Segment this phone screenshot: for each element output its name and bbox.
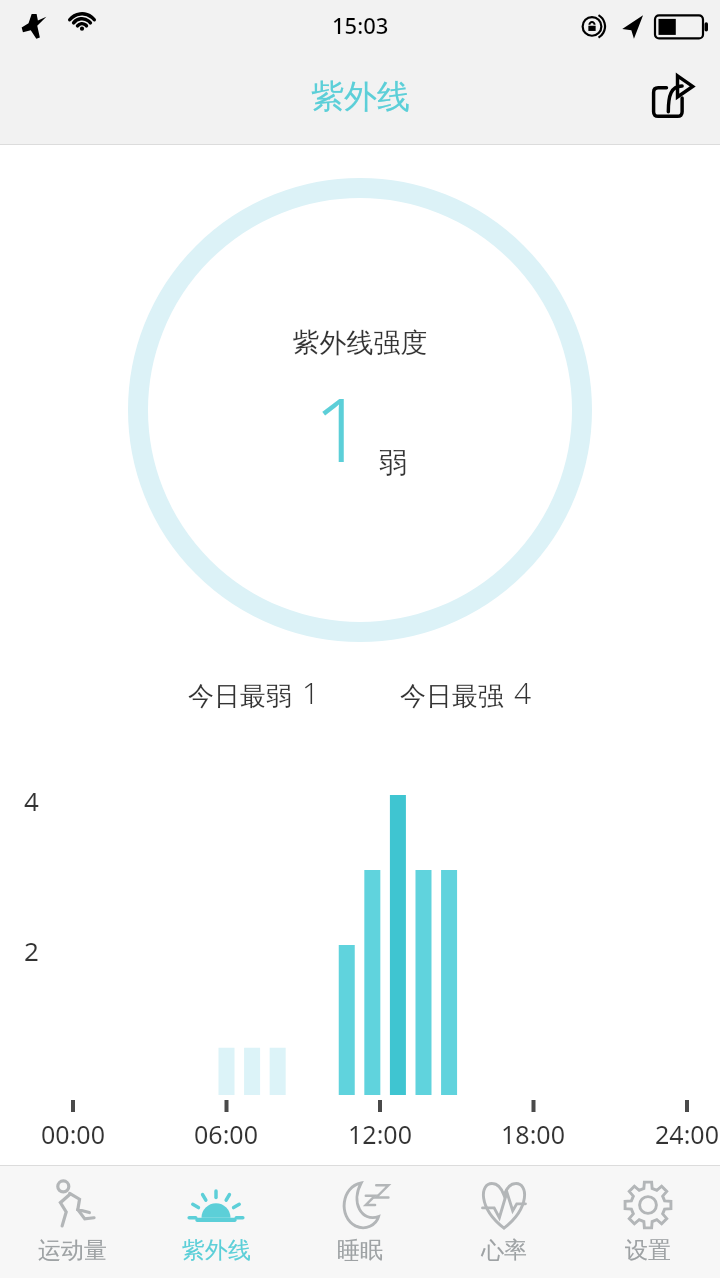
button[interactable]: Share: [640, 65, 704, 129]
staticText: 12:00: [334, 1117, 426, 1151]
staticText: 紫外线: [182, 1236, 251, 1265]
staticText: 设置: [625, 1236, 671, 1265]
staticText: 睡眠: [337, 1236, 383, 1265]
button[interactable]: 设置: [576, 1166, 720, 1278]
button[interactable]: 紫外线: [144, 1166, 288, 1278]
staticText: 18:00: [487, 1117, 579, 1151]
staticText: 紫外线: [311, 76, 410, 118]
staticText: 紫外线强度: [0, 326, 720, 360]
staticText: 15:03: [332, 10, 389, 40]
staticText: 4: [514, 672, 532, 713]
staticText: 1: [314, 368, 365, 488]
staticText: 4: [24, 783, 39, 818]
staticText: 2: [24, 933, 39, 968]
button[interactable]: 心率: [432, 1166, 576, 1278]
staticText: 24:00: [641, 1117, 720, 1151]
staticText: 心率: [481, 1236, 527, 1265]
staticText: 运动量: [38, 1236, 107, 1265]
staticText: 06:00: [180, 1117, 272, 1151]
button[interactable]: 运动量: [0, 1166, 144, 1278]
staticText: 今日最弱: [188, 680, 292, 713]
staticText: 今日最强: [400, 680, 504, 713]
staticText: 弱: [379, 445, 407, 480]
staticText: 00:00: [27, 1117, 119, 1151]
staticText: 1: [302, 672, 320, 713]
button[interactable]: 睡眠: [288, 1166, 432, 1278]
